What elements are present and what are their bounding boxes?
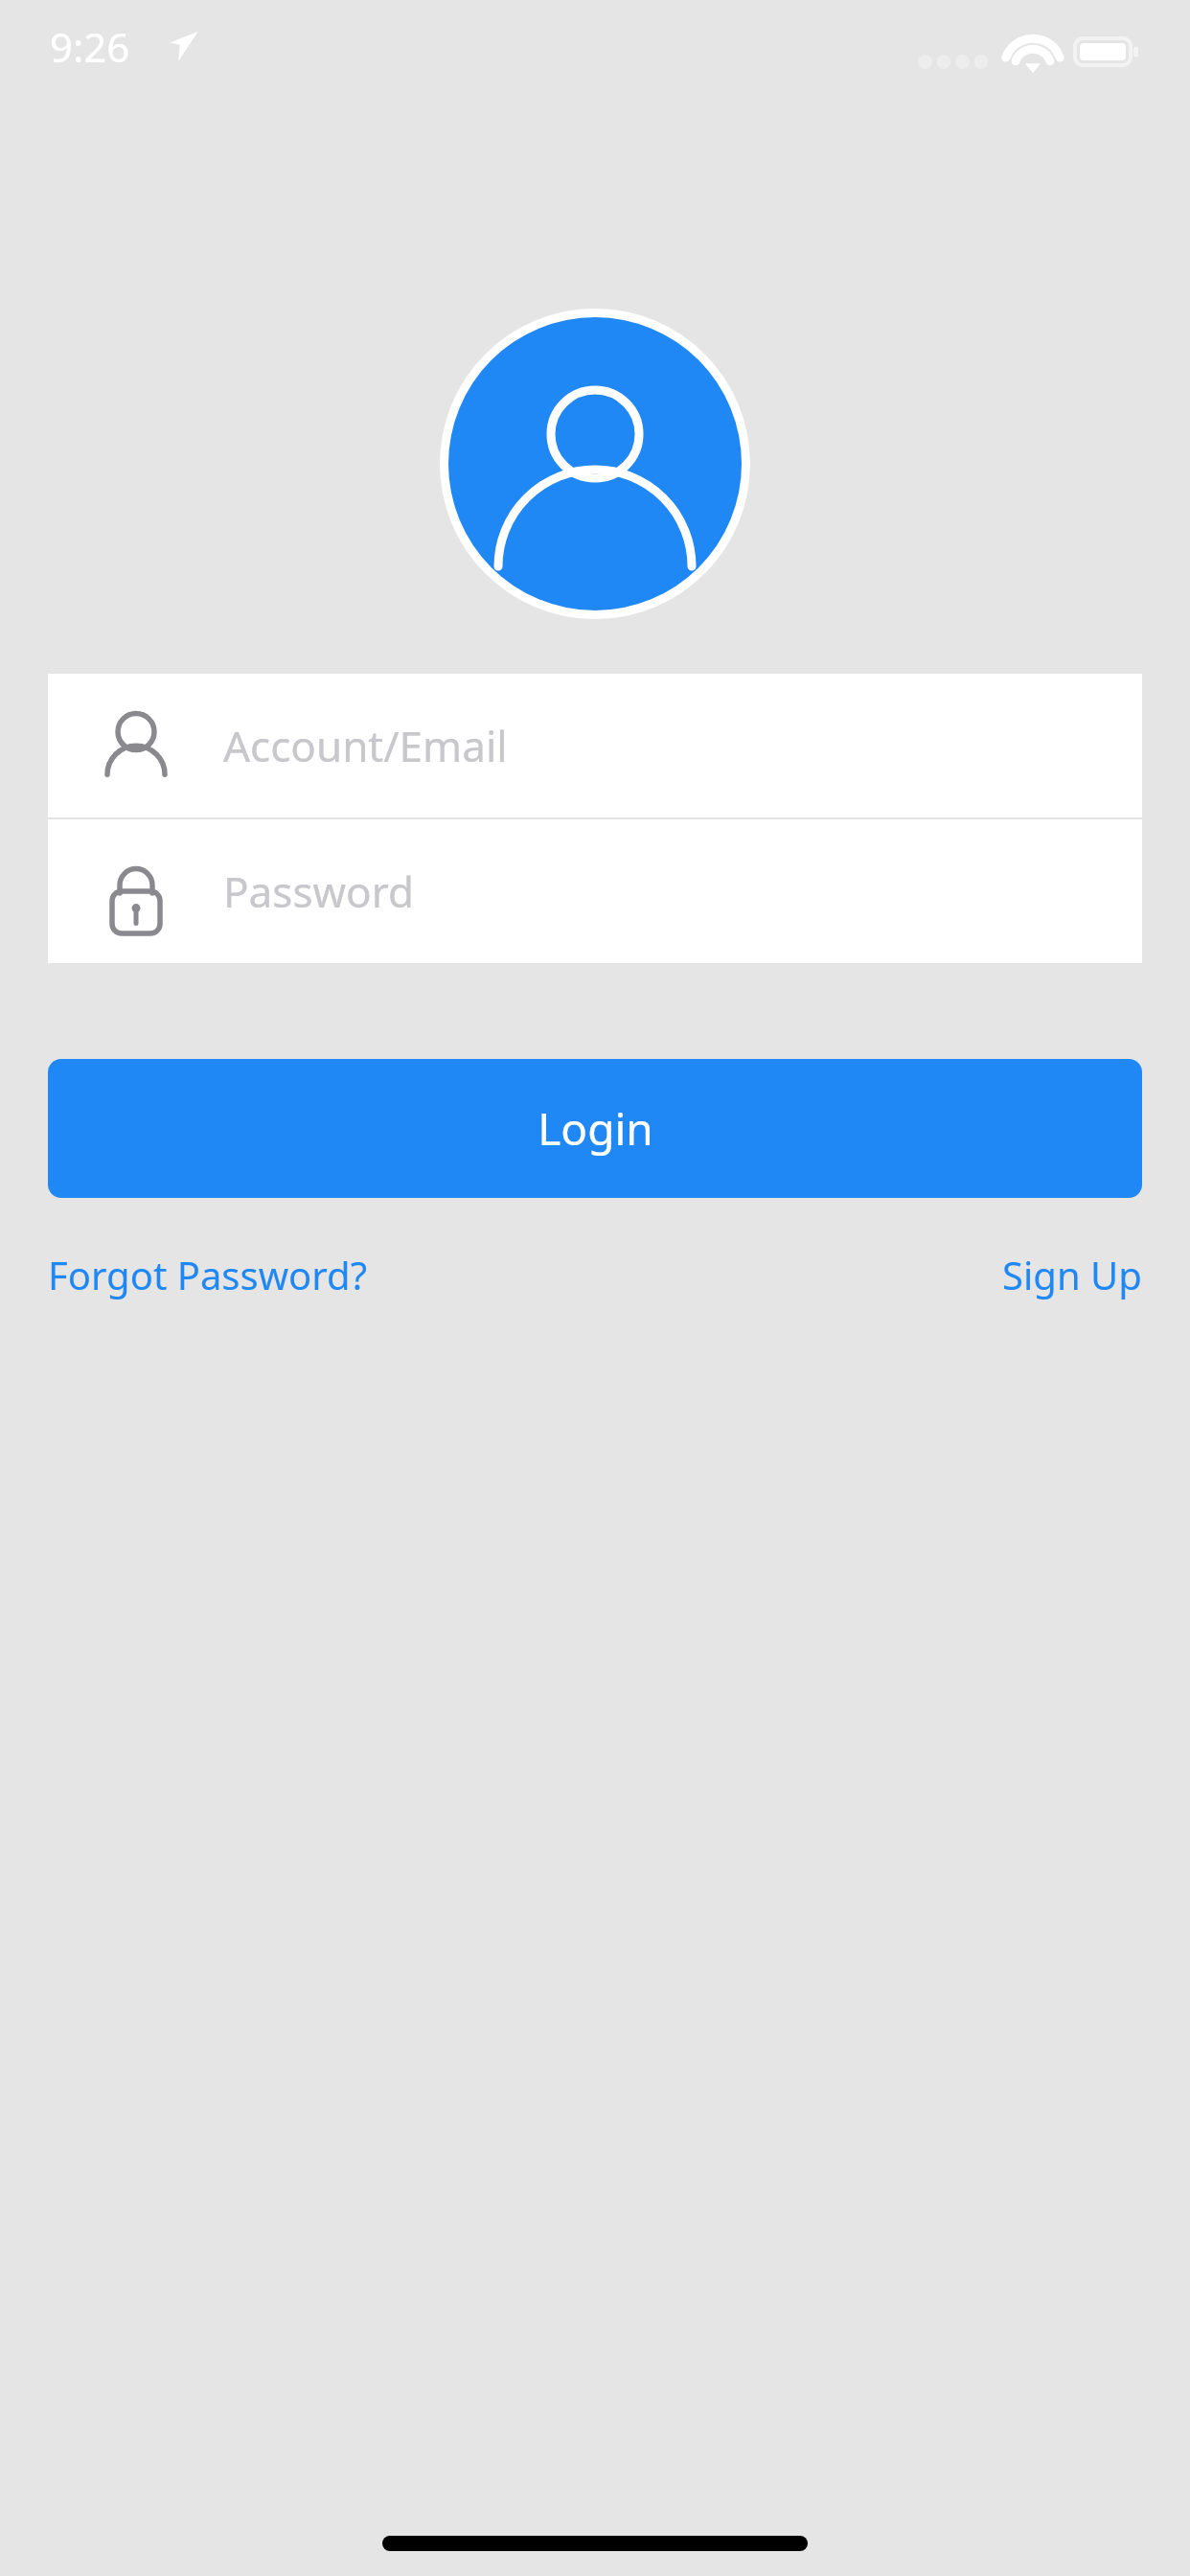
staticText: Login — [538, 1098, 653, 1159]
staticText: 9:26 — [50, 19, 130, 74]
other: Profile avatar — [440, 309, 750, 619]
button[interactable]: Login — [48, 1059, 1142, 1198]
button[interactable]: Sign Up — [1002, 1243, 1142, 1306]
button[interactable]: Forgot Password? — [48, 1243, 367, 1306]
button[interactable]: Password — [48, 819, 1142, 963]
staticText: Password — [223, 862, 415, 920]
staticText: Sign Up — [1002, 1249, 1142, 1300]
button[interactable]: Account/Email — [48, 674, 1142, 817]
staticText: Account/Email — [223, 717, 508, 774]
staticText: Forgot Password? — [48, 1249, 367, 1300]
